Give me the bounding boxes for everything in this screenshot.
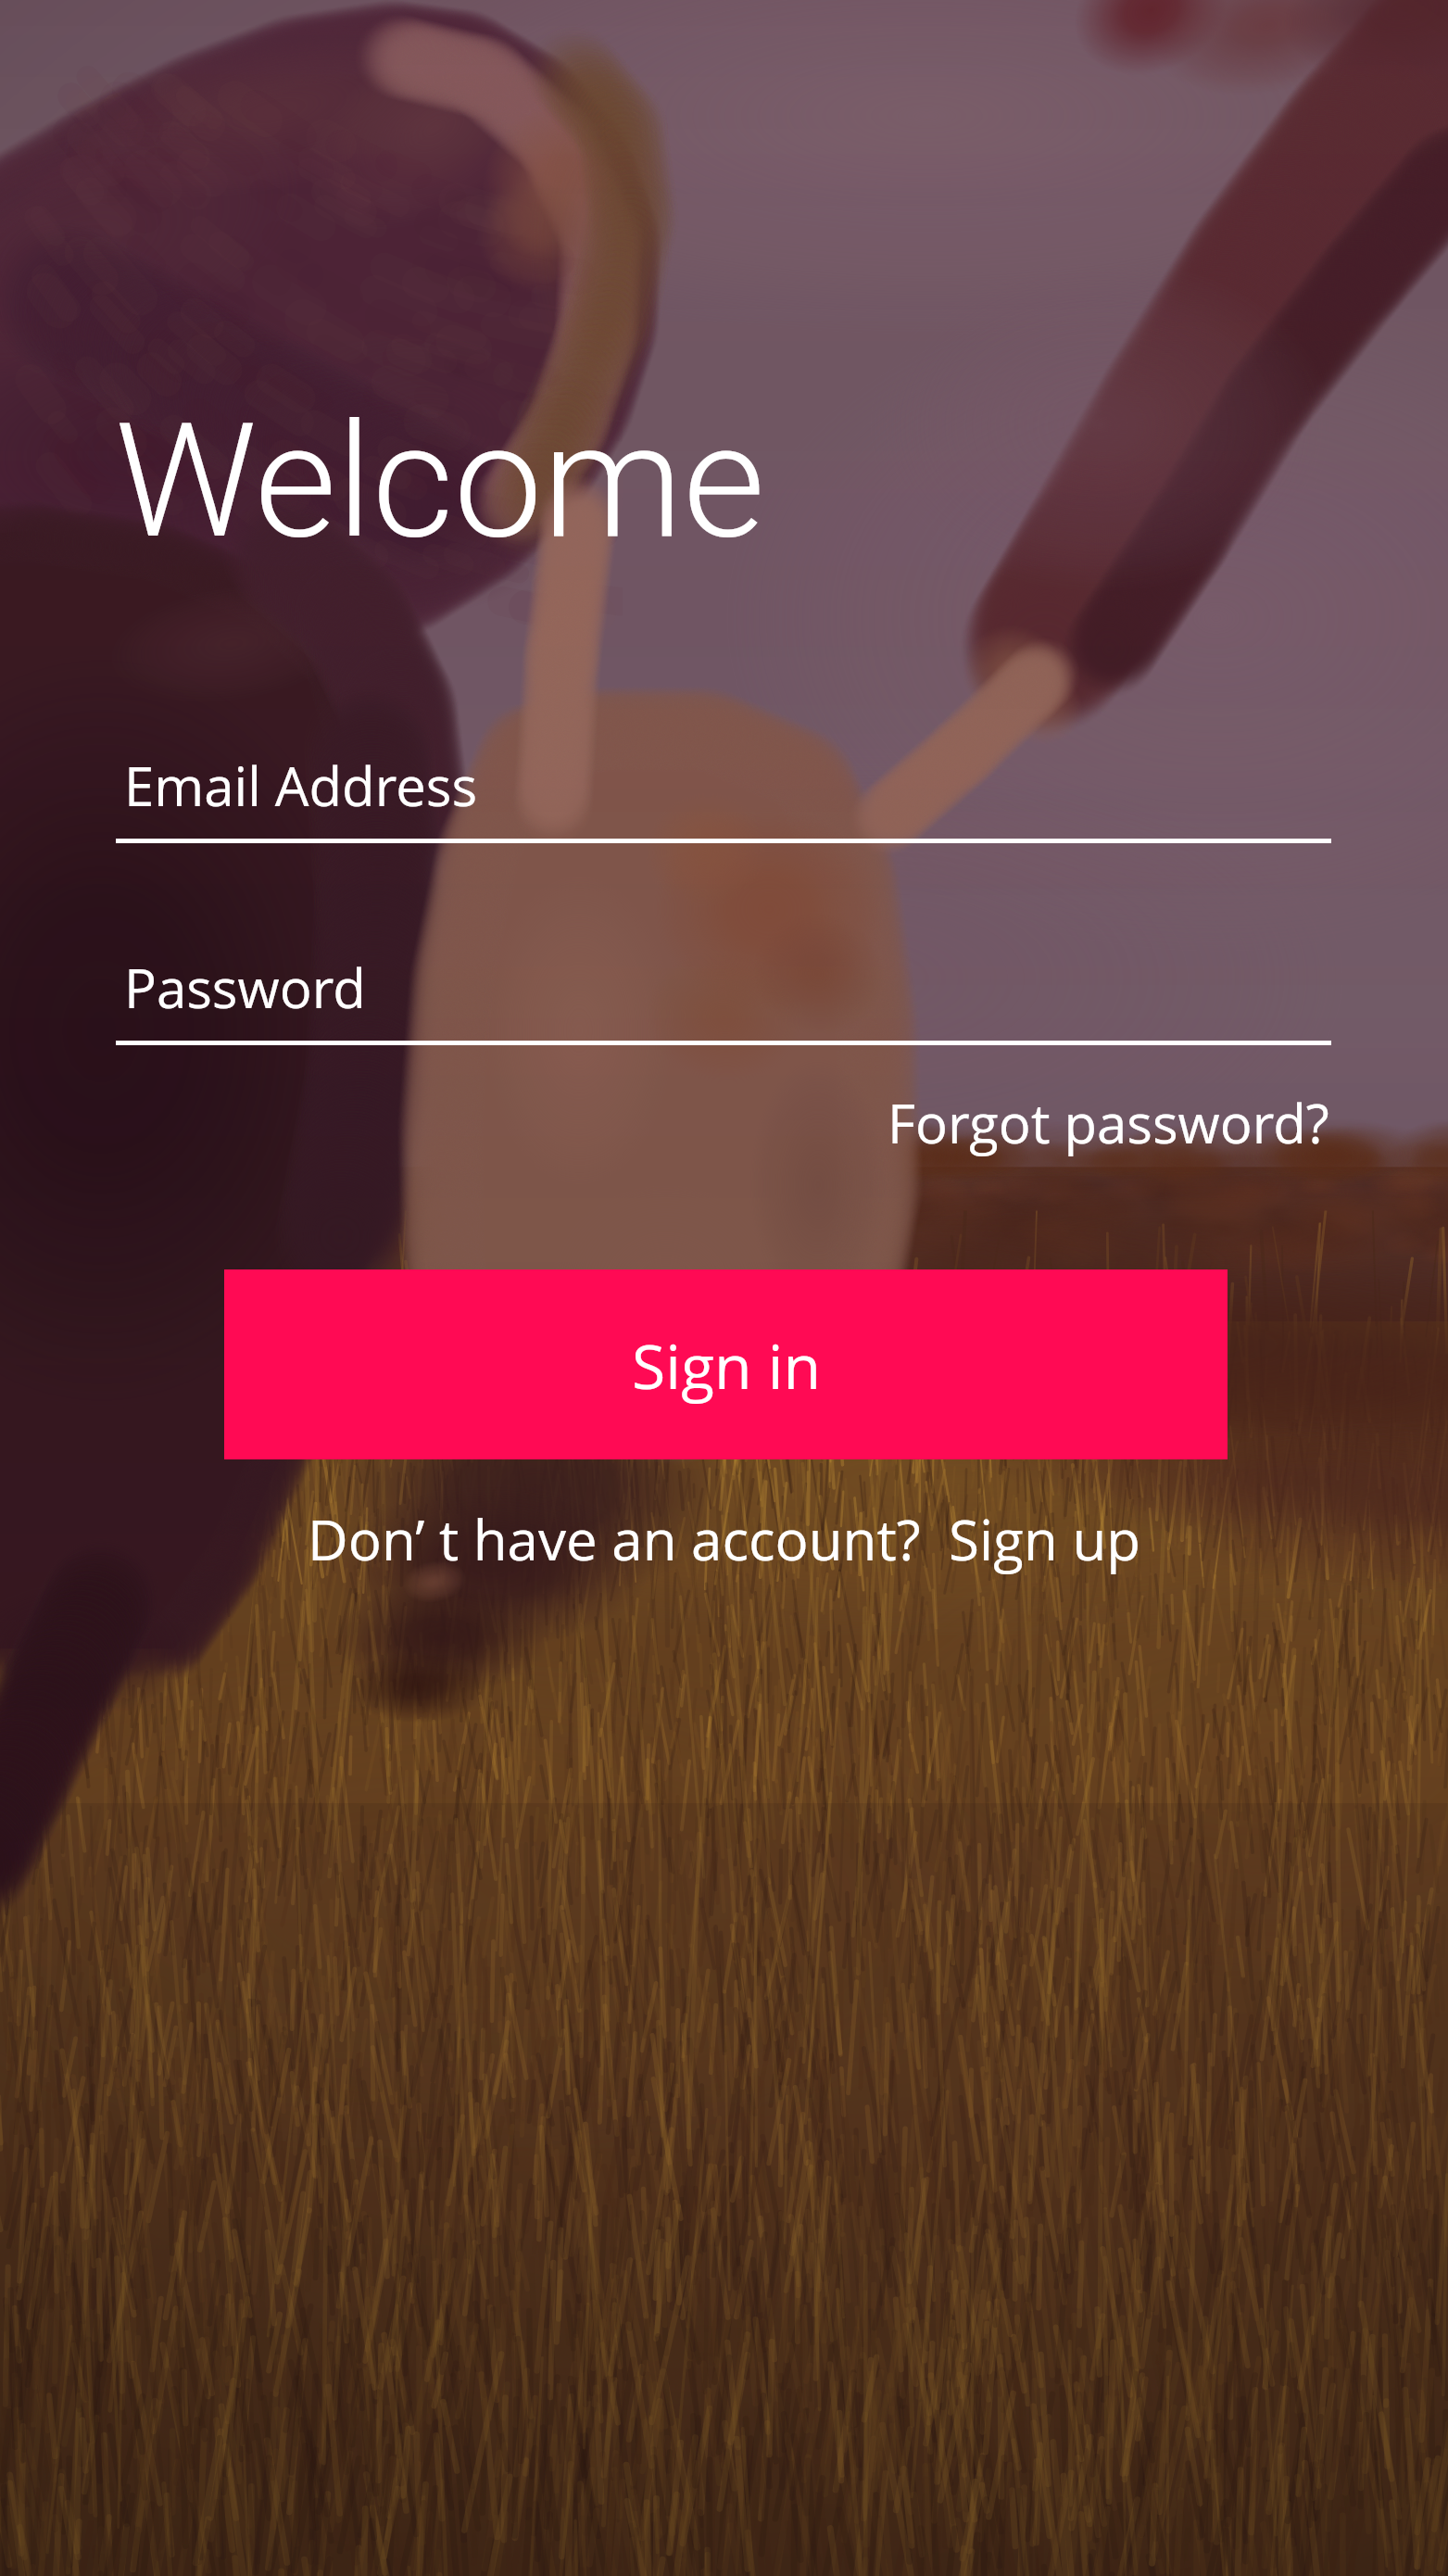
staticText: Sign in: [632, 1323, 821, 1407]
staticText: Email Address: [124, 749, 478, 822]
staticText: Sign up: [949, 1501, 1140, 1577]
button[interactable]: Sign up: [949, 1501, 1140, 1577]
button[interactable]: Sign in: [224, 1269, 1228, 1459]
staticText: Forgot password?: [888, 1086, 1329, 1159]
button[interactable]: Forgot password?: [888, 1086, 1329, 1159]
button[interactable]: Email Address: [116, 749, 1331, 827]
button[interactable]: Password: [116, 951, 1331, 1029]
staticText: Password: [124, 951, 366, 1024]
staticText: Welcome: [115, 388, 765, 574]
staticText: Don’ t have an account?: [308, 1501, 921, 1577]
